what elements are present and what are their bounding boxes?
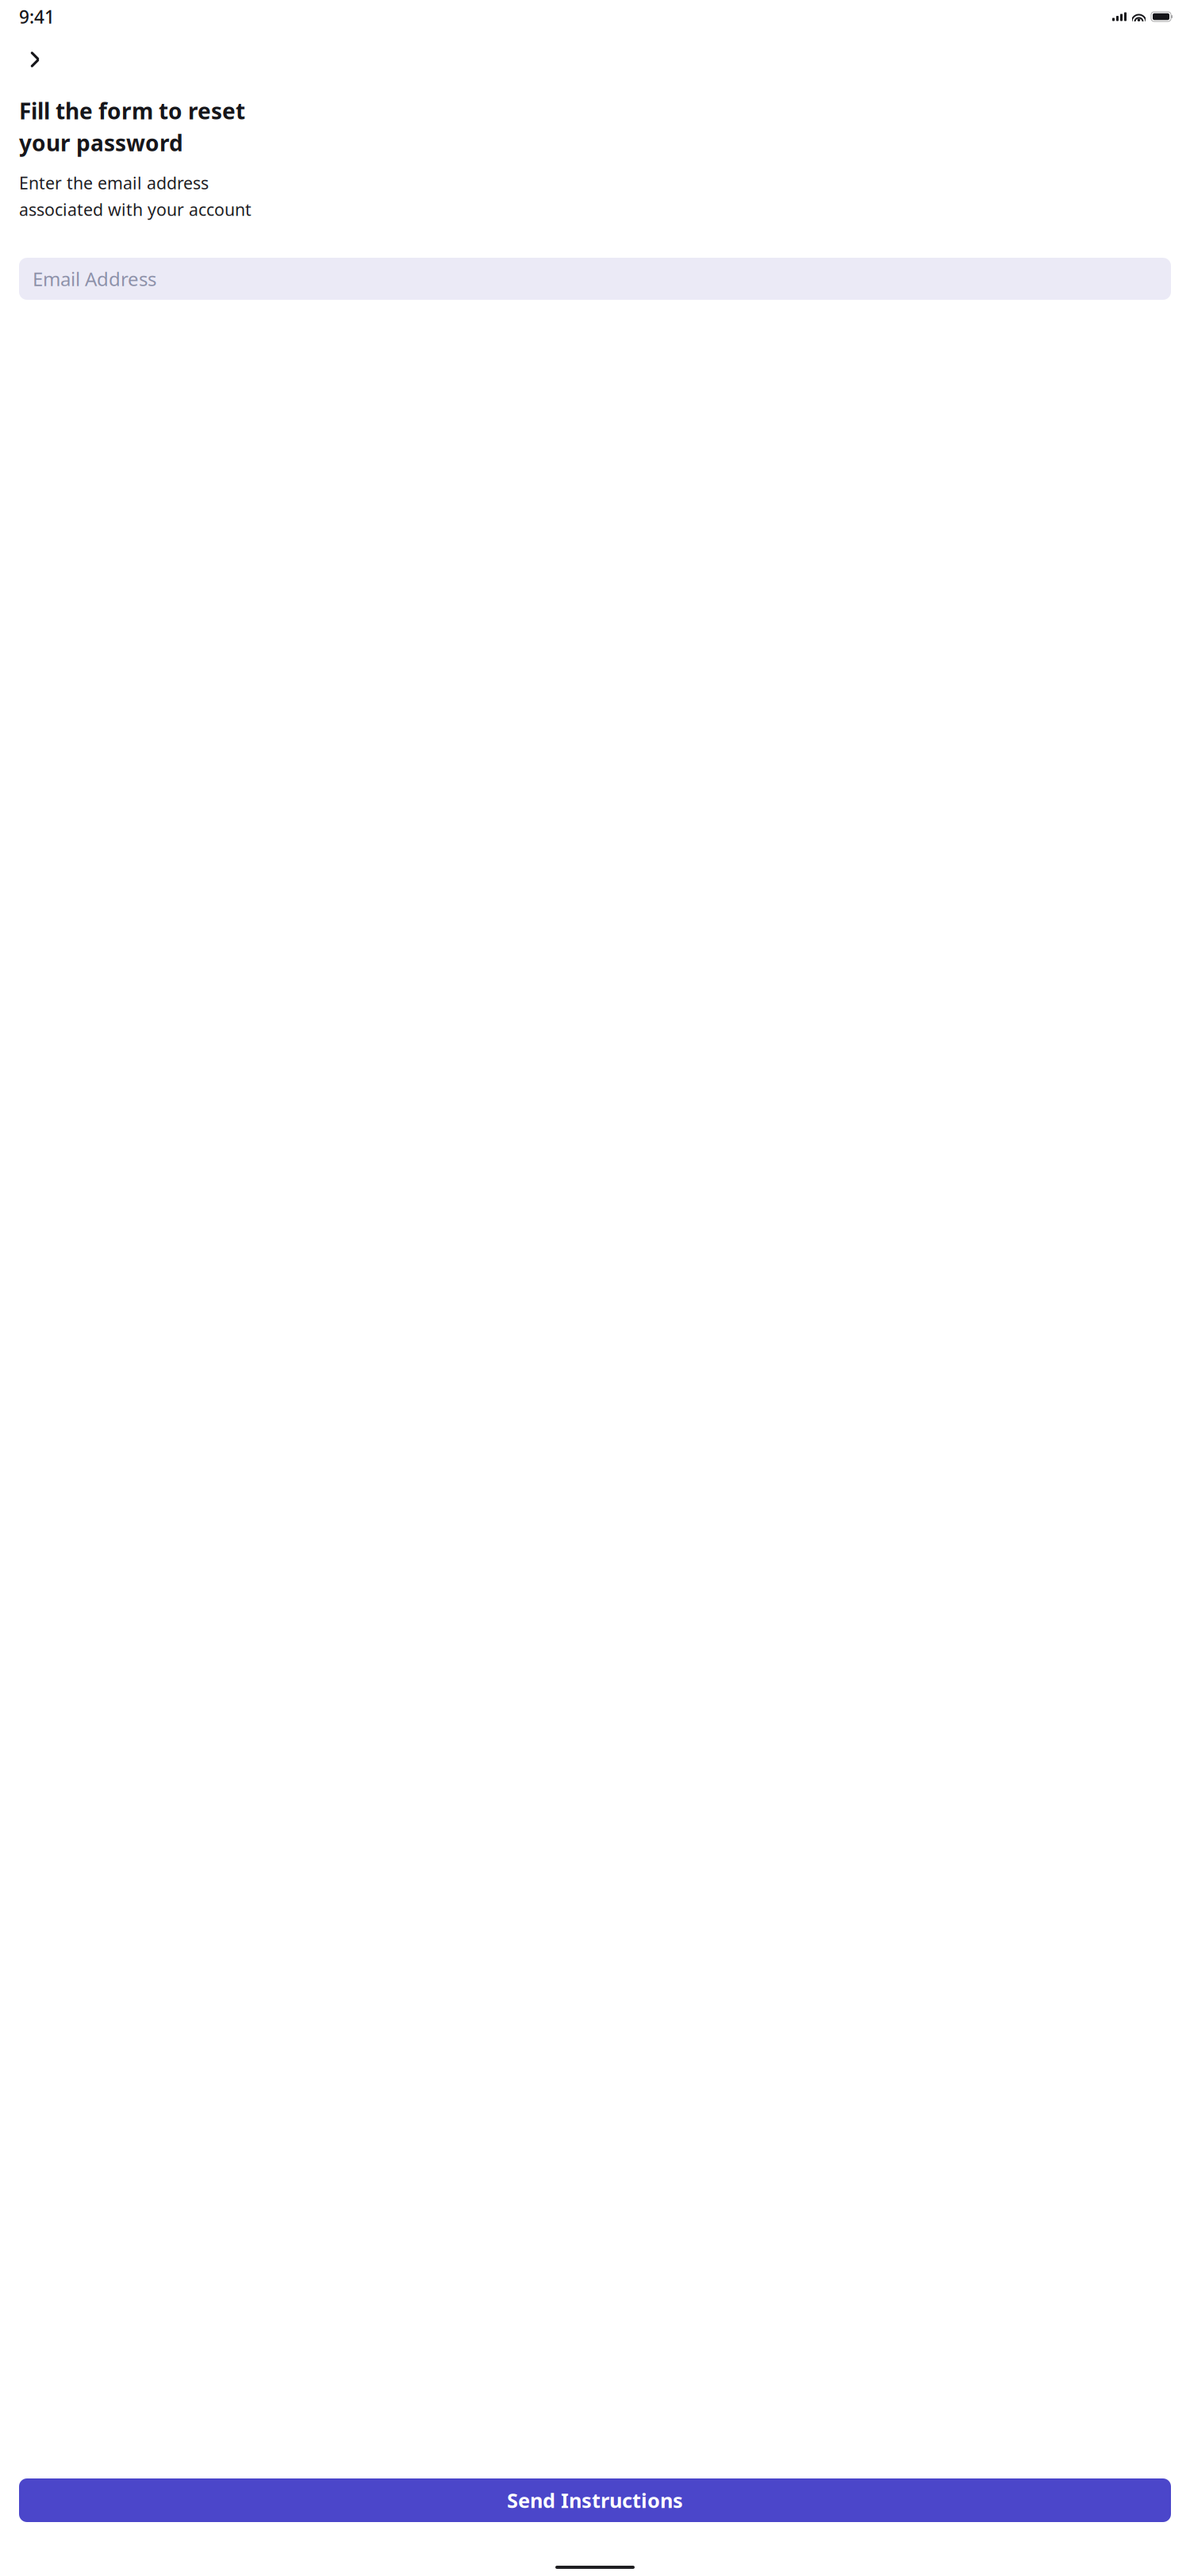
staticText: Fill the form to reset your password — [19, 96, 245, 157]
button[interactable]: Back — [14, 39, 56, 80]
staticText: Email Address — [33, 266, 156, 291]
staticText: 9:41 — [19, 5, 55, 29]
staticText: Enter the email address associated with … — [19, 172, 251, 221]
button[interactable]: Send Instructions — [19, 2478, 1171, 2522]
button[interactable]: Email Address — [19, 258, 1171, 300]
staticText: Send Instructions — [507, 2487, 683, 2514]
